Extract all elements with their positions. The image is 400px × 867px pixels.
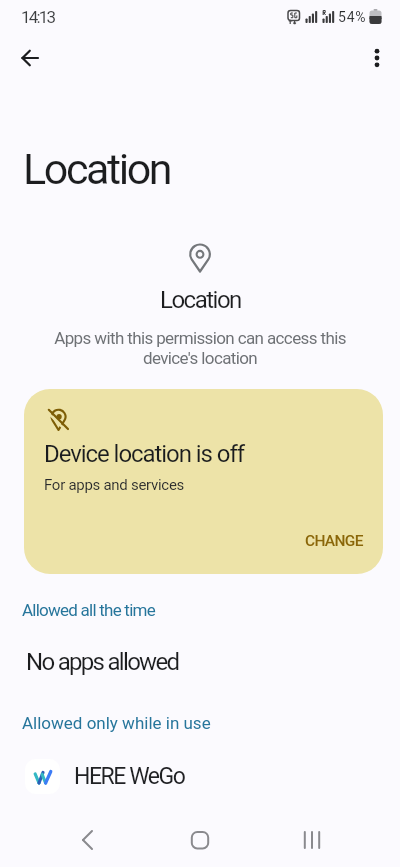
staticText: CHANGE — [305, 532, 363, 550]
staticText: Location — [23, 144, 171, 194]
button[interactable] — [268, 813, 356, 867]
staticText: Allowed only while in use — [22, 713, 211, 733]
staticText: Apps with this permission can access thi… — [54, 328, 346, 368]
staticText: 14:13 — [21, 7, 55, 27]
button[interactable] — [156, 813, 244, 867]
button[interactable] — [6, 34, 54, 82]
staticText: Device location is off — [44, 440, 244, 468]
button[interactable] — [352, 34, 400, 82]
staticText: HERE WeGo — [74, 763, 185, 790]
staticText: For apps and services — [44, 476, 185, 494]
button[interactable]: HERE WeGo — [0, 759, 400, 794]
button[interactable]: CHANGE — [299, 526, 369, 556]
staticText: 54% — [338, 9, 367, 25]
staticText: Location — [160, 286, 241, 314]
staticText: Allowed all the time — [22, 600, 155, 620]
staticText: No apps allowed — [26, 648, 179, 676]
button[interactable] — [44, 813, 132, 867]
